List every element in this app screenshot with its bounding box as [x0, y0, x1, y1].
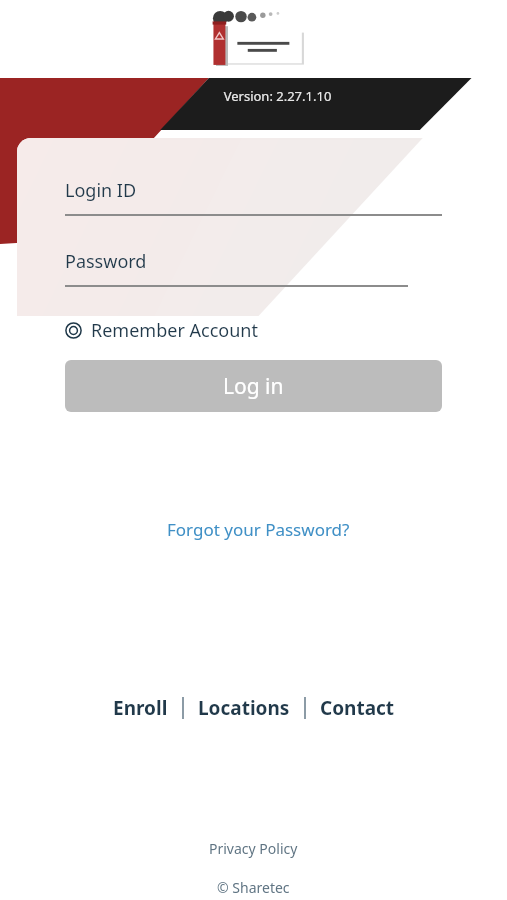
- button[interactable]: Locations: [184, 687, 304, 729]
- button[interactable]: Enroll: [99, 687, 182, 729]
- staticText: Password: [65, 249, 147, 274]
- button[interactable]: Privacy Policy: [201, 836, 306, 861]
- staticText: Log in: [223, 372, 284, 401]
- button[interactable]: Forgot your Password?: [157, 514, 360, 545]
- button[interactable]: Remember Account: [61, 313, 262, 348]
- staticText: Login ID: [65, 178, 137, 203]
- staticText: Remember Account: [91, 318, 258, 343]
- button[interactable]: Login ID: [17, 178, 500, 216]
- button[interactable]: Log in: [65, 360, 442, 412]
- button[interactable]: Contact: [306, 687, 409, 729]
- other: McDowell Cornerstone Credit Union logo: [202, 7, 306, 71]
- staticText: Version: 2.27.1.10: [48, 87, 507, 105]
- staticText: © Sharetec: [217, 878, 290, 897]
- button[interactable]: Password: [17, 249, 500, 287]
